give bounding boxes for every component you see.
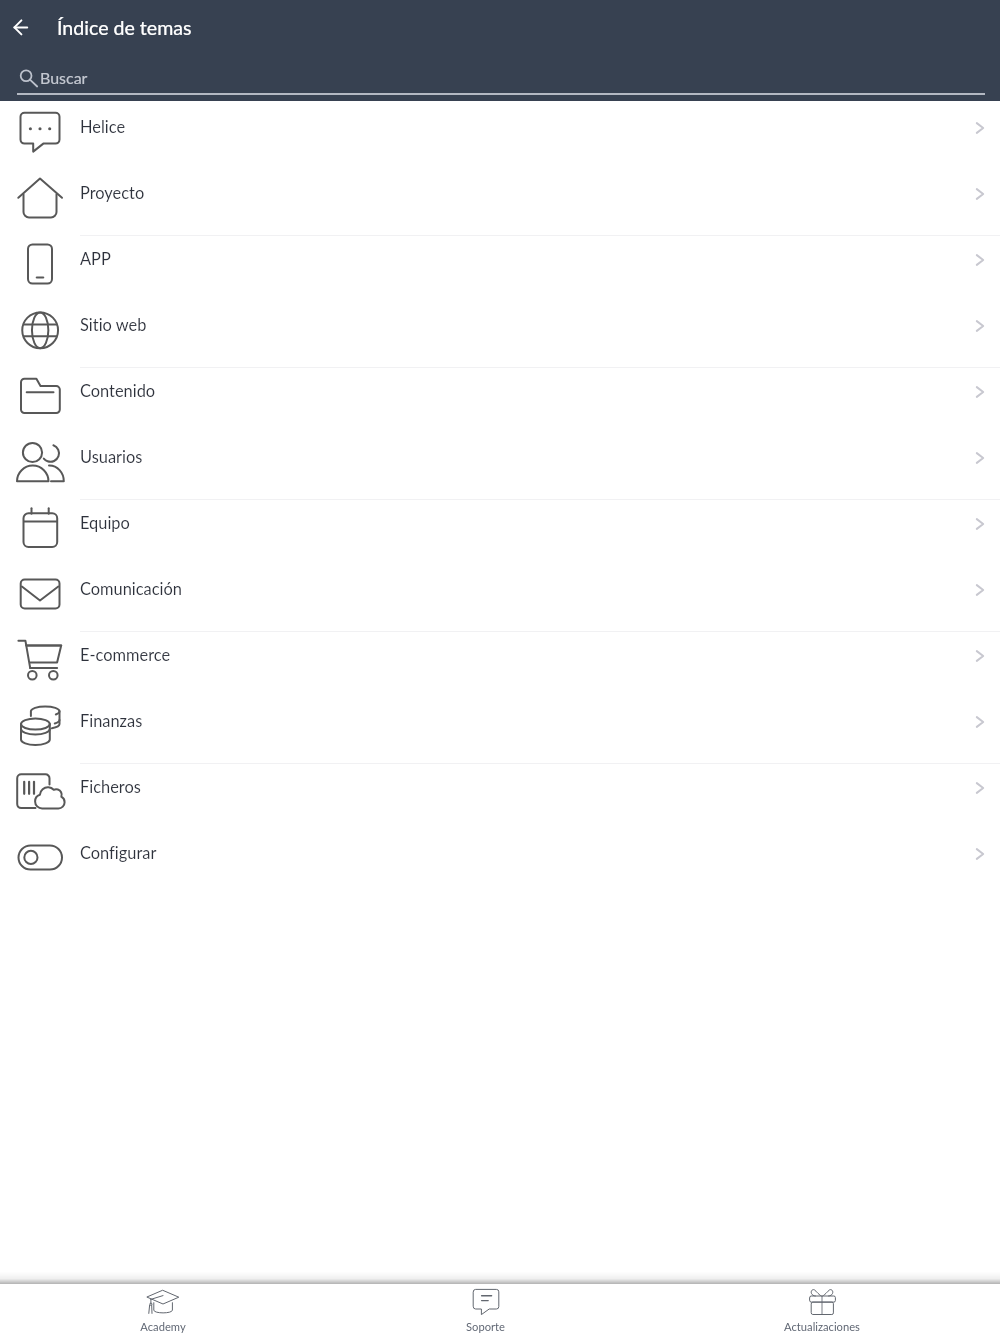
button[interactable]: E-commerce	[0, 629, 1000, 695]
button[interactable]: Helice	[0, 101, 1000, 167]
button[interactable]: Usuarios	[0, 431, 1000, 497]
button[interactable]: Soporte	[466, 1284, 505, 1333]
staticText: Buscar	[40, 68, 88, 87]
staticText: Configurar	[80, 843, 157, 863]
staticText: APP	[80, 249, 111, 269]
button[interactable]: Buscar	[17, 60, 985, 94]
staticText: Equipo	[80, 513, 130, 533]
button[interactable]: Actualizaciones	[784, 1284, 860, 1333]
staticText: Academy	[140, 1320, 186, 1333]
button[interactable]: APP	[0, 233, 1000, 299]
staticText: Sitio web	[80, 315, 147, 335]
button[interactable]: Back	[3, 10, 39, 46]
staticText: Ficheros	[80, 777, 141, 797]
staticText: Contenido	[80, 381, 156, 401]
button[interactable]: Equipo	[0, 497, 1000, 563]
staticText: Soporte	[466, 1320, 505, 1333]
button[interactable]: Sitio web	[0, 299, 1000, 365]
button[interactable]: Finanzas	[0, 695, 1000, 761]
staticText: Comunicación	[80, 579, 182, 599]
staticText: Finanzas	[80, 711, 143, 731]
staticText: Actualizaciones	[784, 1320, 860, 1333]
button[interactable]: Ficheros	[0, 761, 1000, 827]
staticText: Proyecto	[80, 183, 145, 203]
staticText: E-commerce	[80, 645, 171, 665]
staticText: Helice	[80, 117, 126, 137]
button[interactable]: Configurar	[0, 827, 1000, 893]
button[interactable]: Academy	[140, 1284, 186, 1333]
staticText: Usuarios	[80, 447, 143, 467]
button[interactable]: Contenido	[0, 365, 1000, 431]
button[interactable]: Comunicación	[0, 563, 1000, 629]
staticText: Índice de temas	[57, 16, 192, 40]
button[interactable]: Proyecto	[0, 167, 1000, 233]
